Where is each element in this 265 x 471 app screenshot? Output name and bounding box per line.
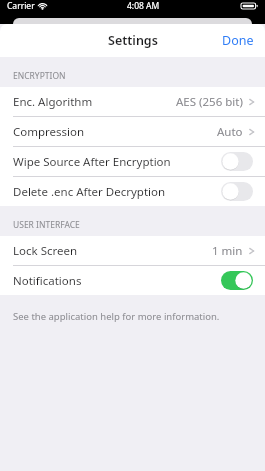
staticText: USER INTERFACE [13,219,80,231]
button[interactable]: Wipe Source After Encryption [0,147,265,176]
staticText: Lock Screen [13,243,78,259]
staticText: Done [222,32,254,49]
button[interactable]: Delete .enc After Decryption [221,182,253,201]
staticText: Auto [217,124,243,140]
button[interactable]: Lock Screen [0,236,265,265]
staticText: Compression [13,124,85,140]
button[interactable]: Notifications [0,266,265,295]
staticText: Carrier [7,0,35,12]
staticText: Settings [108,32,158,49]
staticText: AES (256 bit) [176,94,243,110]
button[interactable]: Compression [0,117,265,146]
button[interactable]: Delete .enc After Decryption [0,177,265,206]
button[interactable]: Wipe Source After Encryption [221,152,253,171]
staticText: ENCRYPTION [13,70,66,82]
staticText: See the application help for more inform… [13,310,220,323]
button[interactable]: Notifications [221,271,253,290]
staticText: 1 min [212,243,243,259]
staticText: Enc. Algorithm [13,94,93,110]
button[interactable]: Done [211,25,265,56]
staticText: Delete .enc After Decryption [13,184,166,200]
staticText: Wipe Source After Encryption [13,154,171,170]
button[interactable]: Enc. Algorithm [0,87,265,116]
staticText: Notifications [13,273,82,289]
staticText: 4:08 AM [127,0,160,12]
